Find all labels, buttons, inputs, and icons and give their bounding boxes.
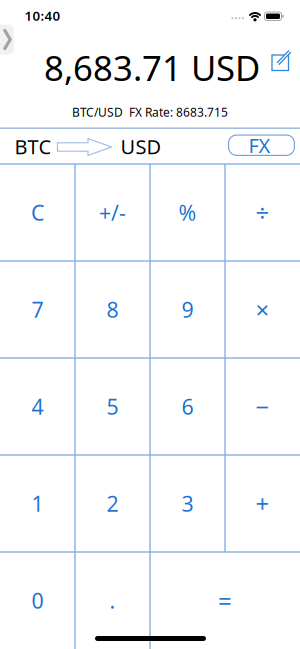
staticText: BTC/USD FX Rate: 8683.715 — [72, 104, 228, 120]
button[interactable]: × — [225, 261, 300, 358]
staticText: + — [255, 488, 269, 519]
button[interactable]: = — [150, 552, 300, 649]
staticText: 0 — [31, 586, 43, 615]
staticText: 9 — [181, 295, 193, 324]
button[interactable]: 5 — [75, 358, 150, 455]
staticText: % — [178, 198, 196, 227]
button[interactable]: . — [75, 552, 150, 649]
button[interactable]: BTC — [7, 131, 59, 161]
button[interactable]: % — [150, 164, 225, 261]
staticText: 8,683.71 USD — [44, 44, 260, 90]
staticText: ÷ — [255, 197, 269, 228]
button[interactable]: Convert direction — [55, 135, 113, 159]
button[interactable]: Edit amount — [268, 47, 296, 75]
button[interactable]: ÷ — [225, 164, 300, 261]
staticText: 3 — [181, 489, 193, 518]
staticText: 7 — [31, 295, 43, 324]
staticText: 1 — [31, 489, 43, 518]
staticText: 6 — [181, 392, 193, 421]
button[interactable]: 7 — [0, 261, 75, 358]
staticText: FX — [248, 132, 270, 158]
button[interactable]: 3 — [150, 455, 225, 552]
button[interactable]: + — [225, 455, 300, 552]
button[interactable]: 2 — [75, 455, 150, 552]
button[interactable]: Open menu — [0, 20, 22, 58]
button[interactable]: 6 — [150, 358, 225, 455]
staticText: = — [218, 585, 232, 616]
staticText: 4 — [31, 392, 43, 421]
staticText: − — [255, 391, 269, 422]
staticText: × — [255, 294, 269, 325]
staticText: 8 — [106, 295, 118, 324]
staticText: +/- — [99, 198, 126, 227]
staticText: 2 — [106, 489, 118, 518]
button[interactable]: − — [225, 358, 300, 455]
staticText: BTC — [14, 133, 51, 160]
button[interactable]: 8 — [75, 261, 150, 358]
button[interactable]: C — [0, 164, 75, 261]
staticText: 10:40 — [24, 7, 60, 24]
button[interactable]: 0 — [0, 552, 75, 649]
staticText: USD — [120, 133, 161, 160]
button[interactable]: USD — [115, 131, 167, 161]
staticText: . — [109, 586, 115, 615]
staticText: C — [31, 198, 44, 227]
button[interactable]: 1 — [0, 455, 75, 552]
button[interactable]: 4 — [0, 358, 75, 455]
button[interactable]: +/- — [75, 164, 150, 261]
button[interactable]: FX rate — [228, 134, 295, 156]
staticText: 5 — [106, 392, 118, 421]
button[interactable]: 9 — [150, 261, 225, 358]
